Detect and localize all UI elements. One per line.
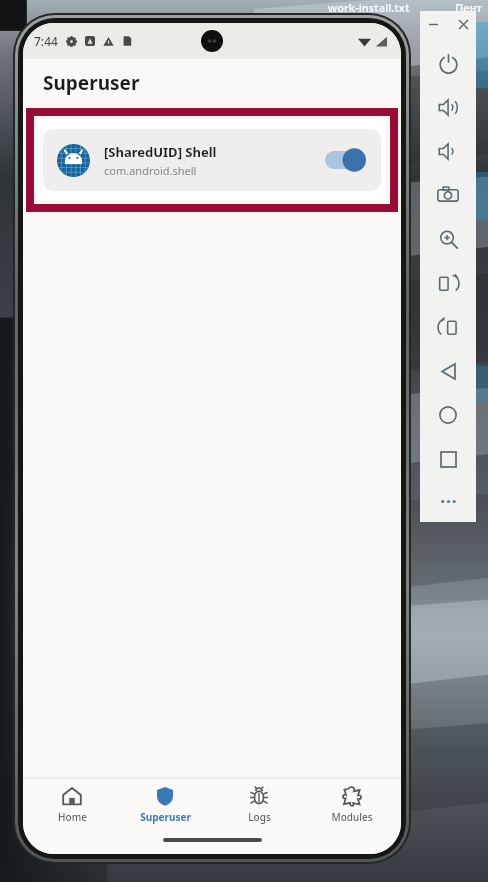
staticText: Modules [331, 810, 373, 824]
button[interactable]: Volume up [420, 85, 476, 129]
button[interactable]: More options [420, 481, 476, 522]
button[interactable]: Home [28, 779, 116, 831]
staticText: Logs [248, 810, 271, 824]
button[interactable]: Close [454, 15, 472, 33]
staticText: Superuser [43, 70, 140, 96]
button[interactable]: Back [420, 349, 476, 393]
button[interactable]: Rotate right [420, 305, 476, 349]
staticText: com.android.shell [104, 163, 197, 178]
staticText: [SharedUID] Shell [104, 143, 217, 161]
button[interactable]: Volume down [420, 129, 476, 173]
button[interactable]: Power [420, 41, 476, 85]
button[interactable]: Logs [215, 779, 303, 831]
staticText: 7:44 [34, 33, 58, 49]
button[interactable]: [SharedUID] Shell [43, 129, 381, 191]
button[interactable]: Zoom [420, 217, 476, 261]
button[interactable]: Modules [308, 779, 396, 831]
button[interactable]: Overview [420, 437, 476, 481]
button[interactable]: Minimize [424, 15, 442, 33]
staticText: Home [58, 810, 87, 824]
button[interactable]: Home [420, 393, 476, 437]
button[interactable]: Toggle superuser access [325, 147, 367, 173]
button[interactable]: Screenshot [420, 173, 476, 217]
staticText: Пент [455, 0, 482, 15]
staticText: work-install.txt [328, 0, 410, 15]
button[interactable]: Superuser [121, 779, 209, 831]
button[interactable]: Rotate left [420, 261, 476, 305]
staticText: Superuser [140, 810, 191, 824]
